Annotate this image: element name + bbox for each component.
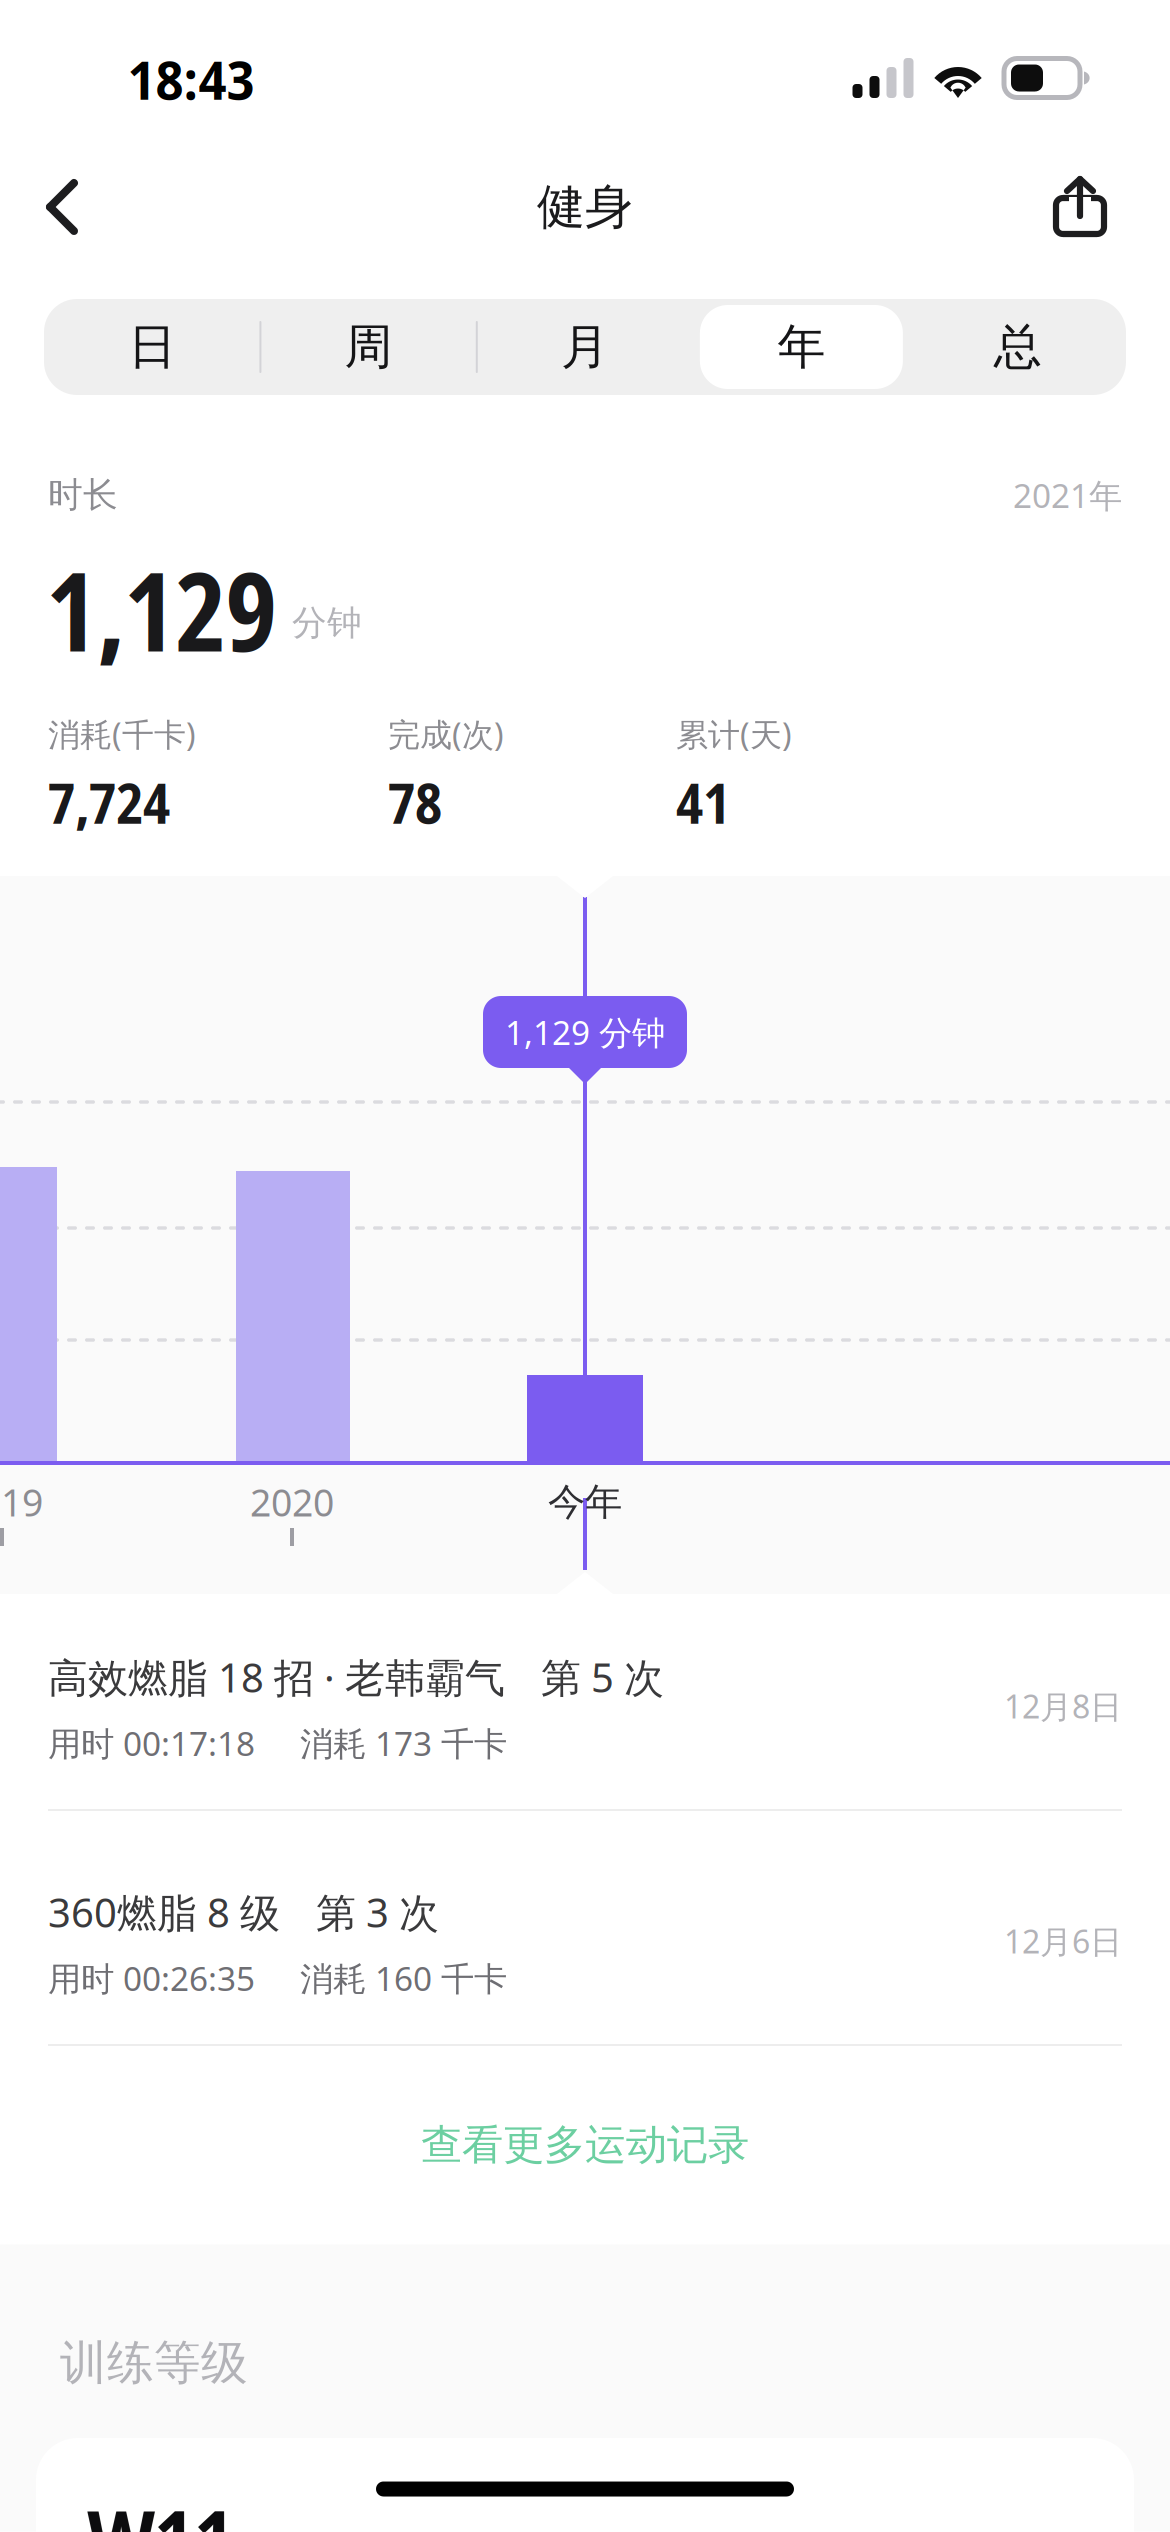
staticText: 查看更多运动记录 (421, 2119, 749, 2171)
button[interactable]: 日 (44, 299, 260, 395)
staticText: 12月8日 (1004, 1684, 1122, 1728)
staticText: 消耗(千卡) (48, 712, 196, 756)
staticText: 12月6日 (1004, 1919, 1122, 1963)
staticText: 总 (994, 317, 1042, 377)
staticText: 分钟 (292, 601, 362, 645)
staticText: 7,724 (48, 764, 170, 840)
staticText: 78 (388, 764, 442, 840)
button[interactable]: 查看更多运动记录 (0, 2045, 1170, 2245)
staticText: 41 (676, 764, 730, 840)
staticText: 用时 00:17:18 消耗 173 千卡 (48, 1720, 507, 1766)
staticText: 周 (345, 317, 393, 377)
button[interactable]: 总 (910, 299, 1126, 395)
staticText: 360燃脂 8 级 第 3 次 (48, 1885, 439, 1939)
staticText: 1,129 分钟 (505, 1009, 665, 1055)
staticText: 19 (1, 1477, 43, 1527)
button[interactable]: 高效燃脂 18 招 · 老韩霸气 第 5 次 (0, 1625, 1170, 1795)
staticText: 用时 00:26:35 消耗 160 千卡 (48, 1955, 507, 2001)
button[interactable]: Back (2, 147, 122, 267)
button[interactable]: Share (1020, 145, 1140, 265)
staticText: 今年 (548, 1478, 622, 1525)
button[interactable]: 月 (477, 299, 693, 395)
staticText: 18:43 (127, 43, 254, 115)
staticText: 累计(天) (676, 712, 792, 756)
button[interactable]: 周 (260, 299, 477, 395)
staticText: 2020 (250, 1477, 334, 1527)
staticText: 日 (128, 317, 176, 377)
staticText: 1,129 (46, 534, 277, 683)
staticText: 高效燃脂 18 招 · 老韩霸气 第 5 次 (48, 1650, 664, 1704)
staticText: 2021年 (1013, 472, 1122, 518)
button[interactable]: 360燃脂 8 级 第 3 次 (0, 1860, 1170, 2030)
staticText: W11 (88, 2483, 234, 2532)
staticText: 健身 (537, 177, 633, 237)
staticText: 完成(次) (388, 712, 504, 756)
staticText: 年 (777, 317, 825, 377)
staticText: 月 (561, 317, 609, 377)
button[interactable]: 年 (693, 299, 910, 395)
staticText: 时长 (48, 473, 118, 517)
staticText: 训练等级 (60, 2334, 248, 2392)
